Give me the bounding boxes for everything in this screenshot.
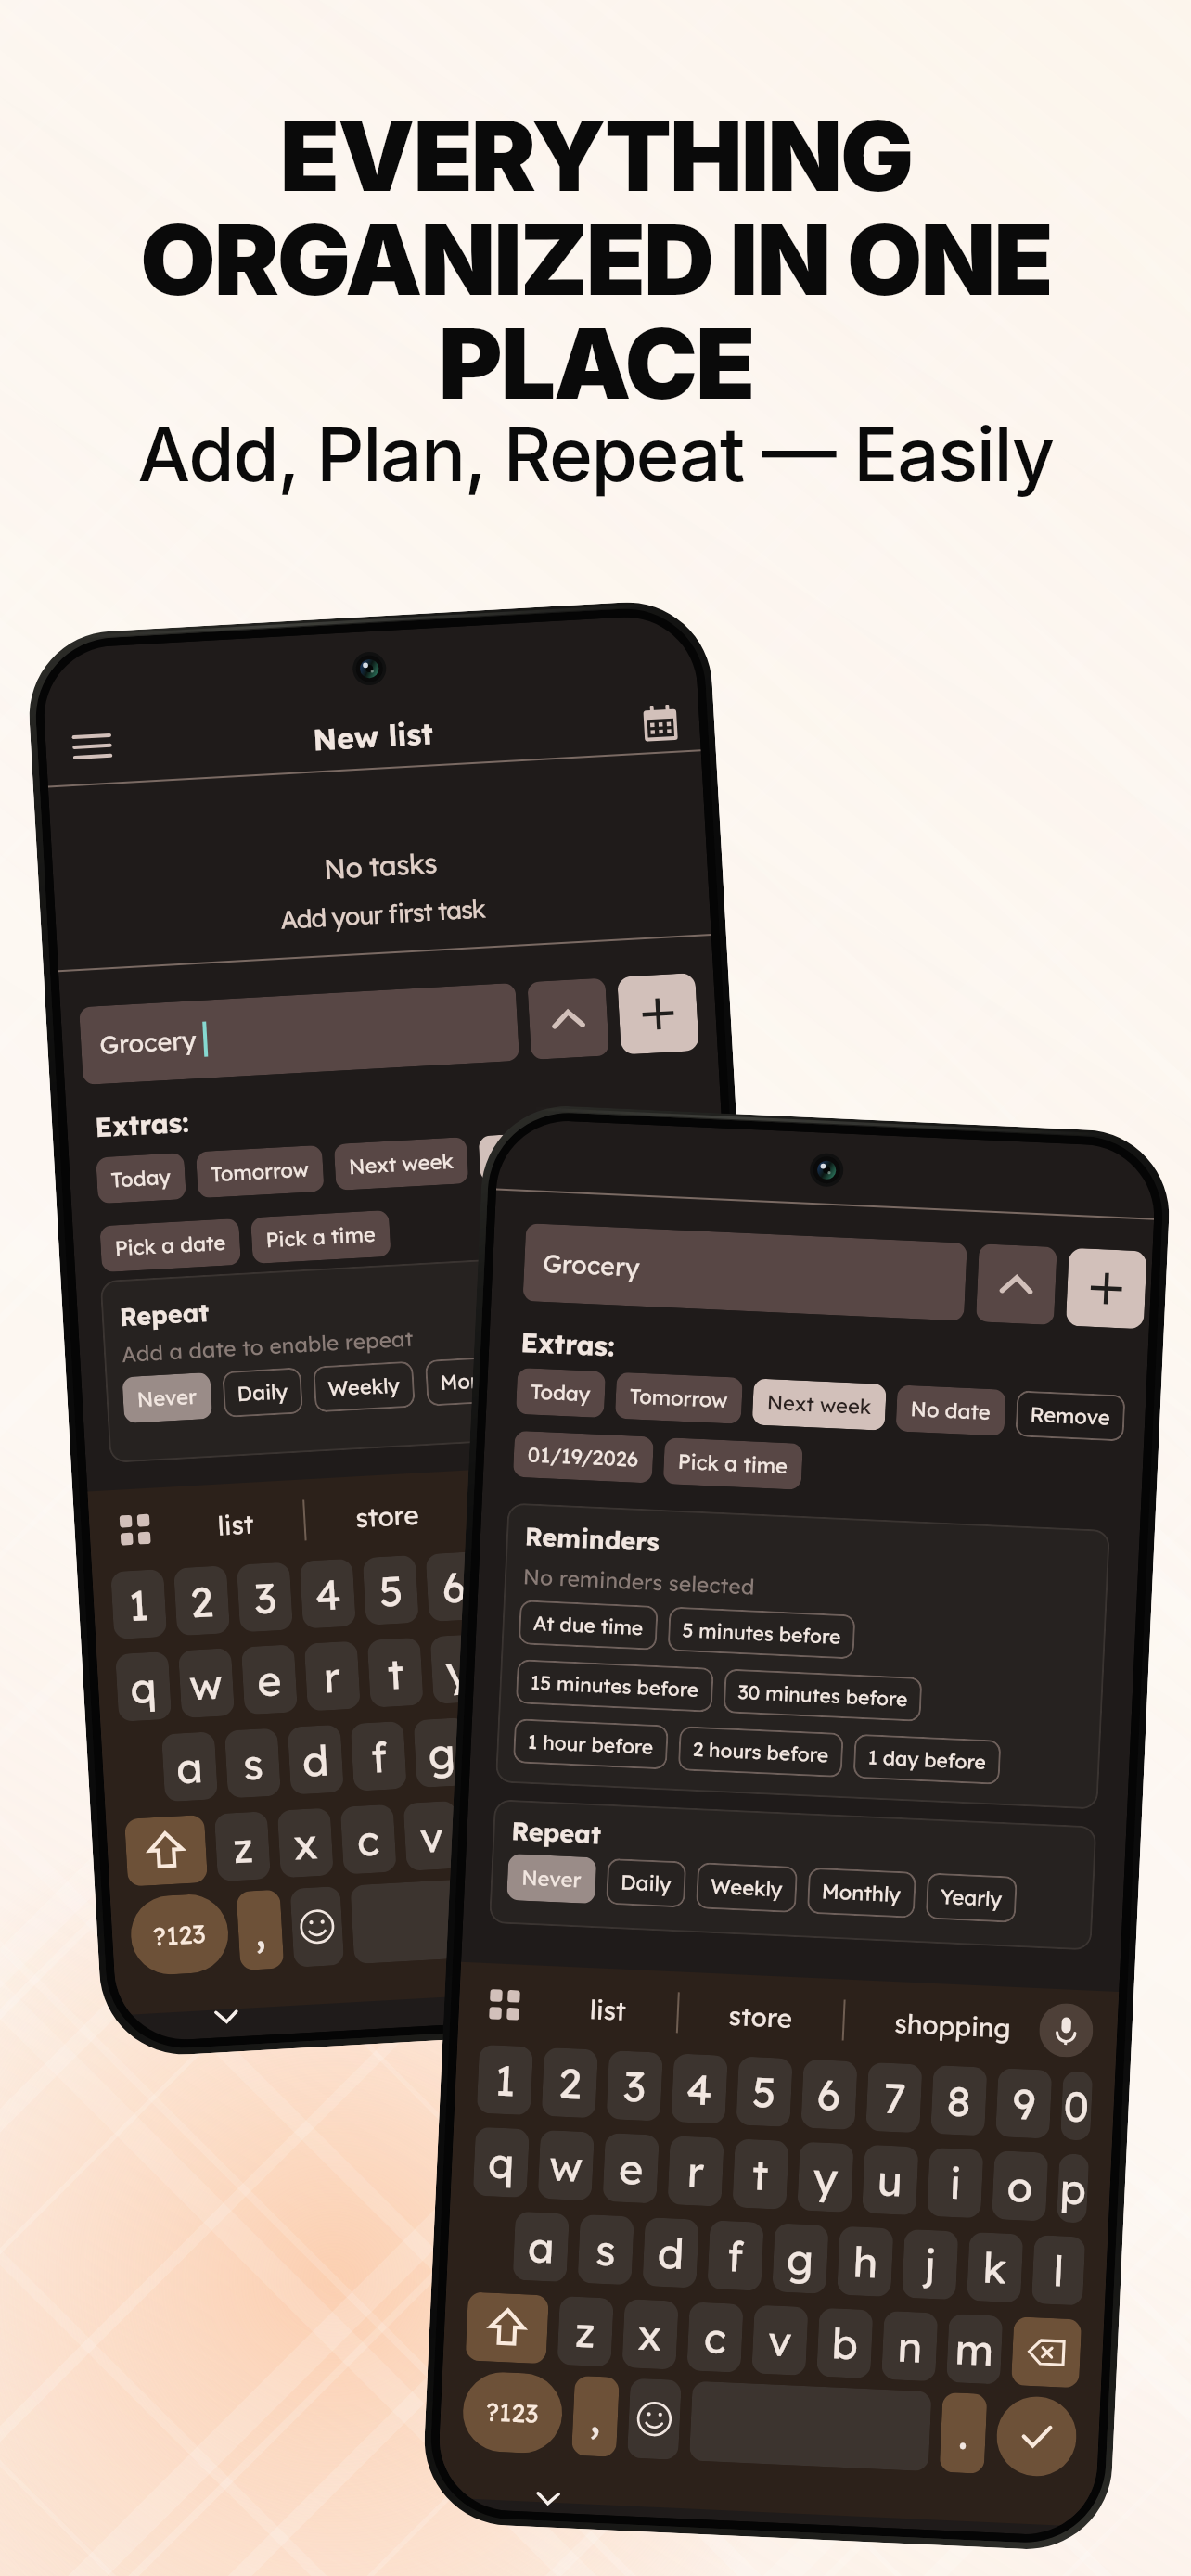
button[interactable]: x [622, 2299, 679, 2370]
button[interactable]: p [682, 1620, 735, 1690]
button[interactable]: q [473, 2127, 530, 2198]
button[interactable]: l [1031, 2235, 1086, 2306]
button[interactable]: Never [122, 1372, 213, 1423]
button[interactable]: 3 [237, 1562, 293, 1632]
button[interactable]: m [946, 2314, 1003, 2385]
button[interactable]: At due time [518, 1600, 658, 1650]
button[interactable]: 0 [677, 1538, 730, 1608]
button[interactable]: d [642, 2217, 699, 2288]
button[interactable]: z [214, 1811, 271, 1882]
button[interactable]: y [430, 1634, 487, 1704]
button[interactable]: 1 [476, 2044, 533, 2115]
button[interactable]: 9 [614, 1541, 671, 1611]
button[interactable]: 1 hour before [513, 1718, 669, 1770]
button[interactable]: 2 hours before [678, 1726, 844, 1778]
button[interactable]: Emoji [290, 1886, 344, 1968]
button[interactable]: Collapse [527, 978, 609, 1060]
button[interactable]: 4 [671, 2053, 728, 2124]
button[interactable]: Weekly [696, 1862, 798, 1913]
button[interactable]: Hide keyboard [204, 1994, 249, 2038]
button[interactable]: ?123 [461, 2371, 564, 2455]
button[interactable]: 6 [425, 1551, 482, 1622]
button[interactable]: No date [478, 1130, 589, 1183]
button[interactable]: 3 [606, 2050, 663, 2121]
button[interactable]: Pick a date [100, 1218, 241, 1272]
button[interactable]: g [772, 2223, 829, 2294]
button[interactable]: w [538, 2130, 594, 2201]
button[interactable]: 7 [488, 1548, 545, 1618]
button[interactable]: h [476, 1714, 533, 1784]
button[interactable]: r [304, 1641, 361, 1711]
button[interactable]: j [902, 2229, 959, 2300]
button[interactable]: 5 minutes before [667, 1607, 856, 1659]
button[interactable]: Today [96, 1153, 186, 1204]
button[interactable]: Calendar [637, 700, 684, 746]
button[interactable]: u [493, 1630, 550, 1701]
button[interactable]: m [592, 1790, 649, 1861]
button[interactable]: Shift [465, 2292, 549, 2364]
button[interactable]: 8 [931, 2065, 987, 2136]
button[interactable]: e [602, 2133, 659, 2204]
button[interactable]: e [241, 1644, 298, 1715]
button[interactable]: Pick a time [663, 1437, 803, 1490]
button[interactable]: 2 [541, 2047, 598, 2118]
button[interactable]: 1 [111, 1569, 167, 1640]
button[interactable]: n [881, 2311, 938, 2382]
button[interactable]: Backspace [655, 1785, 738, 1857]
button[interactable]: f [350, 1721, 407, 1791]
button[interactable]: n [529, 1794, 586, 1864]
button[interactable]: j [539, 1710, 596, 1781]
button[interactable]: o [619, 1623, 676, 1694]
button[interactable]: No date [896, 1385, 1006, 1436]
button[interactable]: 30 minutes before [723, 1668, 922, 1722]
button[interactable]: Add task [1066, 1248, 1147, 1329]
button[interactable]: 6 [801, 2059, 858, 2130]
button[interactable]: 8 [551, 1544, 608, 1615]
button[interactable]: w [178, 1648, 235, 1718]
button[interactable]: , [571, 2376, 620, 2457]
button[interactable]: Weekly [313, 1361, 415, 1413]
button[interactable]: Emoji [627, 2378, 682, 2460]
button[interactable]: Remove [1015, 1390, 1126, 1442]
button[interactable]: c [687, 2302, 744, 2373]
button[interactable]: x [277, 1808, 334, 1878]
button[interactable]: 2 [174, 1565, 230, 1636]
button[interactable]: Daily [606, 1858, 687, 1908]
button[interactable]: Next week [752, 1378, 887, 1431]
button[interactable]: 7 [866, 2062, 923, 2133]
button[interactable]: b [816, 2308, 873, 2379]
button[interactable]: 15 minutes before [516, 1659, 714, 1713]
button[interactable]: 0 [1060, 2071, 1093, 2141]
button[interactable]: d [287, 1724, 344, 1795]
button[interactable]: t [732, 2139, 789, 2210]
button[interactable]: Add task [617, 973, 699, 1055]
button[interactable]: Grocery [523, 1223, 967, 1321]
button[interactable]: k [602, 1707, 659, 1777]
button[interactable]: i [556, 1627, 613, 1697]
button[interactable]: v [752, 2305, 808, 2376]
button[interactable]: i [927, 2148, 984, 2219]
button[interactable]: 5 [736, 2056, 793, 2127]
button[interactable]: Today [516, 1368, 606, 1418]
button[interactable]: Pick a time [251, 1210, 391, 1264]
button[interactable]: t [367, 1637, 424, 1708]
button[interactable]: f [707, 2220, 764, 2291]
button[interactable]: Voice input [663, 1470, 720, 1527]
button[interactable]: b [466, 1797, 523, 1868]
button[interactable]: h [837, 2226, 894, 2297]
button[interactable]: l [665, 1703, 722, 1774]
button[interactable]: Yearly [925, 1873, 1017, 1923]
button[interactable]: . [595, 1869, 643, 1950]
button[interactable]: 5 [362, 1555, 419, 1625]
button[interactable]: 1 day before [853, 1734, 1001, 1785]
button[interactable]: c [340, 1804, 397, 1875]
button[interactable]: Collapse [976, 1244, 1057, 1325]
button[interactable]: Never [507, 1854, 597, 1904]
button[interactable]: p [1057, 2153, 1089, 2223]
button[interactable]: Enter [649, 1863, 749, 1947]
button[interactable]: Monthly [807, 1867, 916, 1918]
button[interactable]: Shift [124, 1815, 208, 1887]
button[interactable] [689, 2381, 932, 2471]
button[interactable]: q [115, 1651, 172, 1722]
button[interactable]: Voice input [1038, 2002, 1094, 2058]
